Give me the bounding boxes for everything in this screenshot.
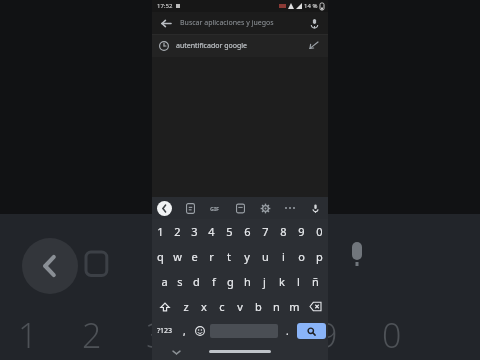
button[interactable]: x [195, 294, 213, 319]
staticText: 6 [244, 224, 251, 239]
button[interactable]: z [177, 294, 195, 319]
button[interactable]: Settings [257, 200, 273, 216]
button[interactable]: v [231, 294, 249, 319]
other: Insert suggestion [307, 39, 321, 53]
staticText: . [286, 324, 289, 338]
staticText: 3 [191, 224, 198, 239]
staticText: e [191, 249, 198, 264]
staticText: 17:52 [157, 2, 173, 10]
staticText: l [297, 274, 300, 289]
staticText: 1 [18, 312, 38, 358]
button[interactable]: n [267, 294, 285, 319]
button[interactable]: y [238, 244, 256, 269]
staticText: 14 % [304, 2, 318, 10]
staticText: s [177, 274, 183, 289]
button[interactable]: t [220, 244, 238, 269]
button[interactable]: Translate [232, 200, 248, 216]
button[interactable]: Back [158, 15, 174, 31]
button[interactable]: m [285, 294, 303, 319]
staticText: f [212, 274, 216, 289]
staticText: g [227, 274, 234, 289]
button[interactable]: d [188, 269, 205, 294]
staticText: 0 [316, 224, 323, 239]
staticText: k [279, 274, 285, 289]
staticText: o [298, 249, 305, 264]
button[interactable]: o [292, 244, 310, 269]
staticText: 8 [280, 224, 287, 239]
button[interactable]: Emoji [192, 319, 208, 343]
button[interactable]: 7 [256, 219, 274, 244]
staticText: n [273, 299, 280, 314]
button[interactable]: autentificador google [152, 35, 328, 57]
button[interactable]: b [249, 294, 267, 319]
button[interactable]: 0 [310, 219, 328, 244]
staticText: , [183, 324, 186, 338]
button[interactable]: q [152, 244, 169, 269]
button[interactable]: , [177, 319, 192, 343]
staticText: a [161, 274, 168, 289]
button[interactable]: f [205, 269, 222, 294]
staticText: p [316, 249, 323, 264]
staticText: m [289, 299, 300, 314]
staticText: 5 [226, 224, 233, 239]
staticText: i [282, 249, 285, 264]
button[interactable]: Search [297, 323, 326, 339]
staticText: y [244, 249, 250, 264]
button[interactable]: 6 [238, 219, 256, 244]
button[interactable]: Back [157, 201, 172, 216]
staticText: autentificador google [176, 41, 307, 51]
button[interactable]: ?123 [152, 319, 177, 343]
button[interactable]: 1 [152, 219, 169, 244]
button[interactable]: Clipboard [182, 200, 198, 216]
button[interactable]: k [273, 269, 290, 294]
staticText: 1 [157, 224, 164, 239]
button[interactable]: 2 [169, 219, 186, 244]
staticText: 0 [382, 312, 402, 358]
staticText: x [201, 299, 207, 314]
button[interactable]: 4 [203, 219, 220, 244]
staticText: v [237, 299, 243, 314]
button[interactable]: g [222, 269, 239, 294]
button[interactable]: r [203, 244, 220, 269]
button[interactable]: e [186, 244, 203, 269]
button[interactable]: u [256, 244, 274, 269]
staticText: j [263, 274, 266, 289]
button[interactable]: 9 [292, 219, 310, 244]
staticText: 9 [298, 224, 305, 239]
button[interactable]: GIF [207, 200, 223, 216]
button[interactable]: ñ [307, 269, 324, 294]
button[interactable]: 5 [220, 219, 238, 244]
button[interactable]: Voice search [306, 15, 322, 31]
button[interactable]: j [256, 269, 273, 294]
staticText: 7 [262, 224, 269, 239]
button[interactable]: w [169, 244, 186, 269]
staticText: r [209, 249, 214, 264]
button[interactable]: . [280, 319, 295, 343]
staticText: z [183, 299, 189, 314]
staticText: 2 [82, 312, 102, 358]
button[interactable]: 3 [186, 219, 203, 244]
button[interactable]: p [310, 244, 328, 269]
button[interactable]: c [213, 294, 231, 319]
staticText: 3 [146, 312, 166, 358]
button[interactable]: Shift [152, 294, 177, 319]
staticText: Buscar aplicaciones y juegos [180, 18, 306, 28]
staticText: GIF [210, 205, 220, 212]
staticText: u [262, 249, 269, 264]
button[interactable]: s [172, 269, 188, 294]
staticText: w [173, 249, 182, 264]
staticText: d [193, 274, 200, 289]
button[interactable]: h [239, 269, 256, 294]
button[interactable]: i [274, 244, 292, 269]
staticText: b [255, 299, 262, 314]
button[interactable]: l [290, 269, 307, 294]
button[interactable]: Voice input [307, 200, 323, 216]
staticText: 4 [208, 224, 215, 239]
button[interactable]: 8 [274, 219, 292, 244]
staticText: h [244, 274, 251, 289]
button[interactable]: a [156, 269, 172, 294]
button[interactable]: Backspace [303, 294, 328, 319]
button[interactable]: Hide keyboard [170, 346, 182, 358]
button[interactable]: More options [282, 200, 298, 216]
